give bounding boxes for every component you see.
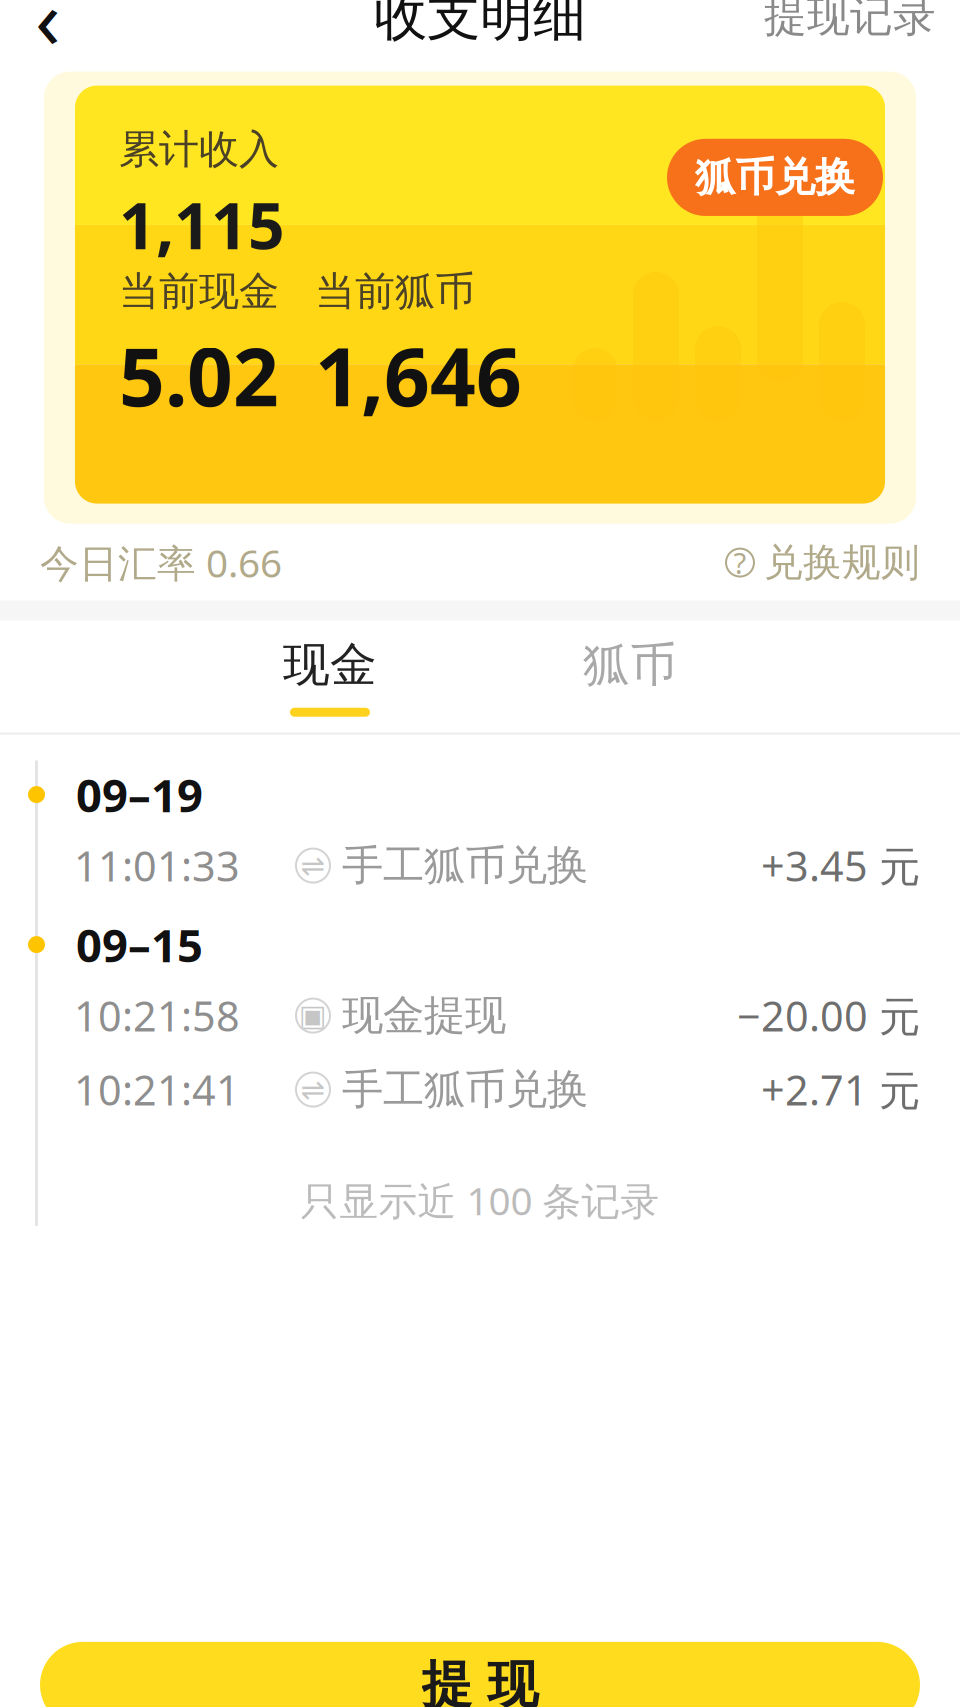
staticText: 1,646 [315, 322, 522, 428]
button[interactable]: Back [0, 0, 96, 62]
staticText: 狐币 [583, 636, 677, 694]
staticText: 狐币兑换 [695, 153, 855, 202]
button[interactable]: ? [726, 539, 920, 586]
staticText: −20.00 元 [737, 988, 920, 1043]
staticText: +3.45 元 [761, 838, 920, 893]
button[interactable]: 现金 [180, 621, 480, 733]
button[interactable]: 提 现 [40, 1642, 920, 1707]
staticText: 提现记录 [764, 0, 936, 43]
staticText: 累计收入 [119, 125, 279, 174]
staticText: 收支明细 [374, 0, 586, 49]
staticText: 现金 [283, 636, 377, 694]
staticText: 手工狐币兑换 [342, 1064, 588, 1115]
staticText: ⇌ [300, 849, 325, 882]
staticText: 提 现 [421, 1654, 538, 1707]
staticText: 今日汇率 0.66 [40, 537, 282, 588]
staticText: 1,115 [119, 182, 285, 267]
button[interactable]: 提现记录 [740, 0, 960, 62]
staticText: ⇌ [300, 1073, 325, 1106]
staticText: 11:01:33 [74, 838, 240, 893]
staticText: 09–19 [76, 764, 203, 825]
staticText: 当前现金 [119, 267, 279, 316]
button[interactable]: 狐币兑换 [667, 139, 883, 216]
staticText: ▣ [299, 999, 327, 1032]
staticText: ? [733, 543, 746, 582]
staticText: 09–15 [76, 914, 203, 975]
button[interactable]: 狐币 [480, 621, 780, 733]
staticText: 10:21:41 [74, 1062, 240, 1117]
staticText: 10:21:58 [74, 988, 240, 1043]
staticText: 兑换规则 [764, 539, 920, 586]
staticText: 当前狐币 [315, 267, 475, 316]
staticText: +2.71 元 [761, 1062, 920, 1117]
staticText: 5.02 [119, 322, 279, 428]
staticText: ‹ [35, 0, 61, 71]
staticText: 现金提现 [342, 990, 506, 1041]
staticText: 手工狐币兑换 [342, 840, 588, 891]
staticText: 只显示近 100 条记录 [300, 1175, 659, 1226]
